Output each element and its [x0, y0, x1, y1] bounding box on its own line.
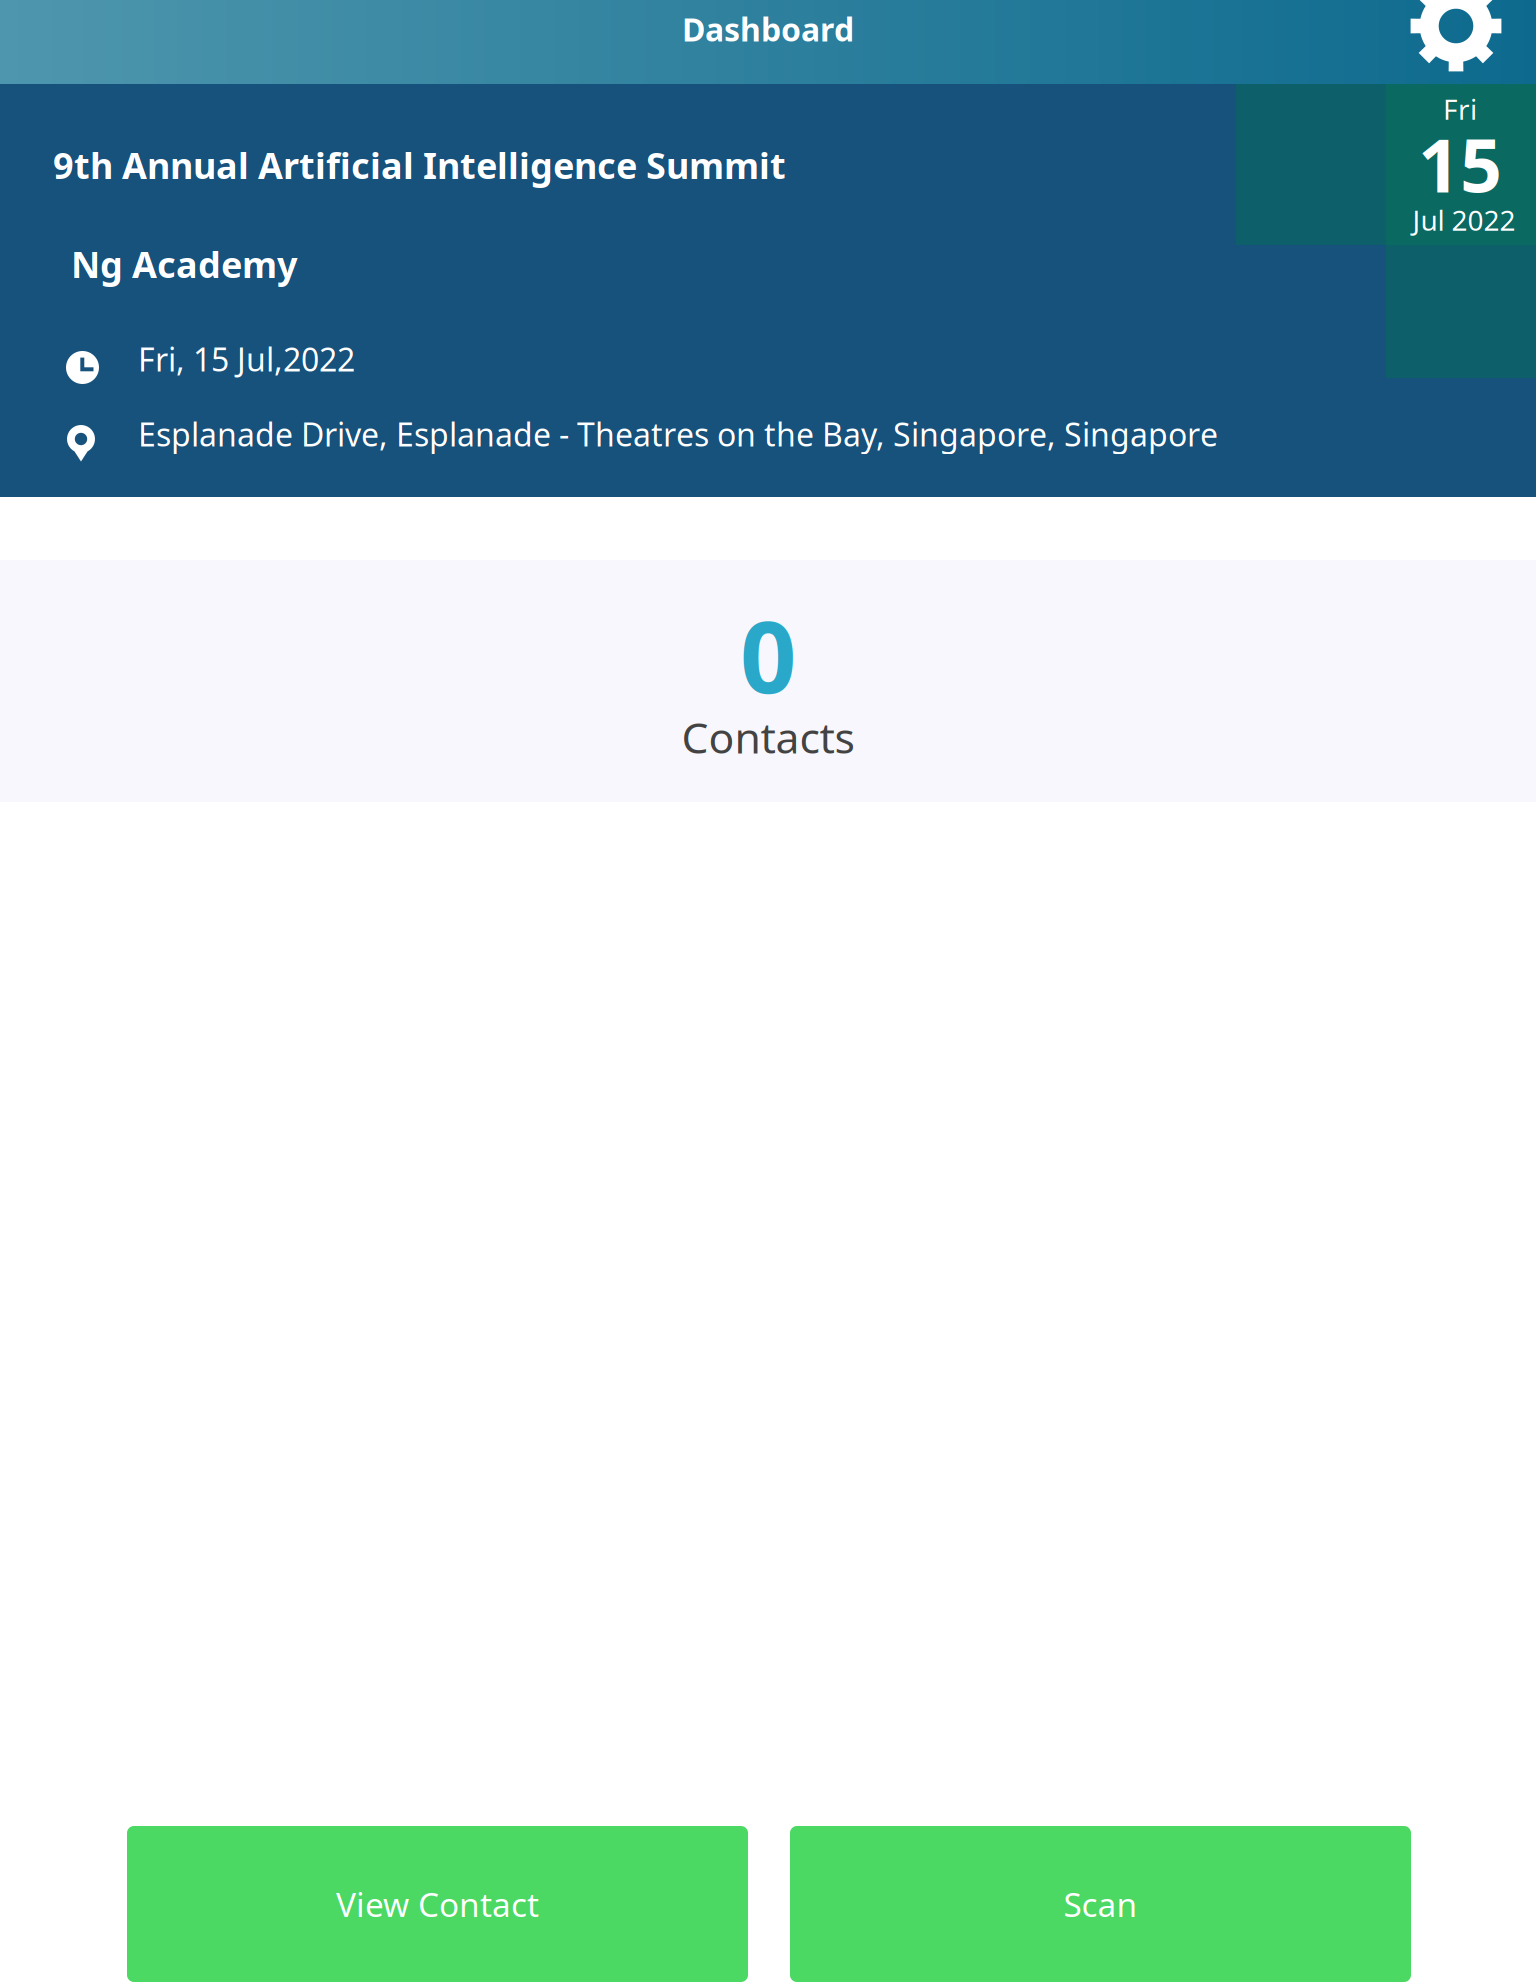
button[interactable]: 0	[0, 560, 1536, 802]
staticText: View Contact	[336, 1882, 539, 1926]
button[interactable]: Scan	[790, 1826, 1411, 1982]
staticText: 0	[740, 589, 796, 720]
button[interactable]: View Contact	[127, 1826, 748, 1982]
staticText: Jul 2022	[1412, 201, 1515, 239]
staticText: Dashboard	[682, 8, 854, 50]
staticText: Fri, 15 Jul,2022	[138, 338, 355, 380]
button[interactable]: Settings	[1390, 0, 1522, 92]
staticText: Fri	[1443, 90, 1477, 128]
staticText: 15	[1418, 115, 1502, 213]
staticText: Esplanade Drive, Esplanade - Theatres on…	[138, 413, 1218, 455]
staticText: 9th Annual Artificial Intelligence Summi…	[53, 141, 786, 189]
staticText: Ng Academy	[71, 240, 298, 288]
staticText: Contacts	[681, 709, 854, 765]
staticText: Scan	[1063, 1882, 1137, 1926]
